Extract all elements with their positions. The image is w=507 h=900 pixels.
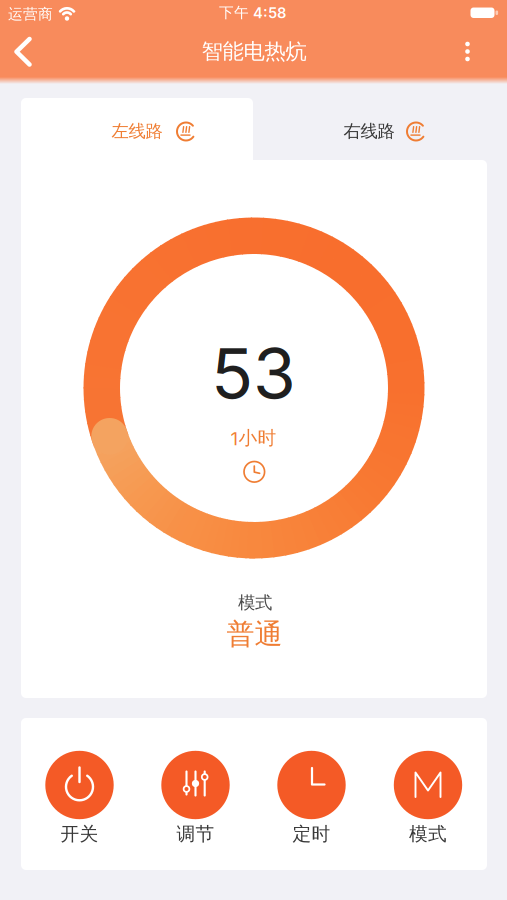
staticText: 模式 [409,822,447,845]
staticText: 运营商 [8,5,53,23]
staticText: 调节 [176,822,214,845]
staticText: 开关 [60,822,98,845]
staticText: 1小时 [230,426,276,449]
button[interactable]: 开关 [25,751,133,851]
staticText: 智能电热炕 [201,38,306,65]
staticText: 右线路 [343,121,394,142]
staticText: 定时 [292,822,330,845]
staticText: 左线路 [111,121,162,142]
button[interactable]: More options [445,29,489,73]
button[interactable]: 左线路 [21,98,253,160]
staticText: 模式 [238,592,272,613]
button[interactable]: 定时 [257,751,365,851]
staticText: 普通 [226,617,282,651]
button[interactable]: 调节 [141,751,249,851]
staticText: 下午 4:58 [219,3,286,21]
button[interactable]: 模式 [374,751,482,851]
button[interactable]: Back [1,29,45,73]
staticText: 53 [211,332,296,414]
button[interactable]: 右线路 [253,98,487,160]
